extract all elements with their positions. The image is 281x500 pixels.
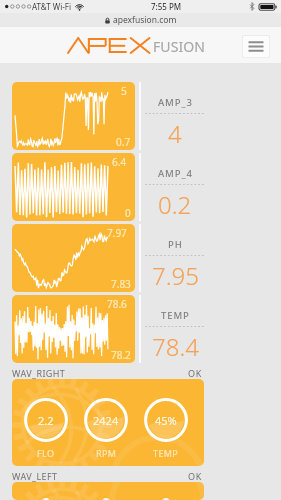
button[interactable]: 5 — [12, 82, 135, 150]
staticText: 7:55 PM — [151, 1, 182, 12]
staticText: OK — [188, 470, 203, 482]
staticText: apexfusion.com — [113, 14, 177, 26]
staticText: 7.95 — [152, 259, 199, 292]
staticText: 45% — [155, 413, 177, 428]
staticText: 0.2 — [158, 188, 192, 221]
staticText: 0.7 — [116, 135, 131, 149]
staticText: TEMP — [161, 309, 190, 322]
staticText: 0 — [125, 206, 131, 220]
staticText: AMP_4 — [158, 167, 193, 180]
button[interactable]: AMP_3 — [145, 82, 205, 150]
staticText: 78.4 — [152, 330, 199, 363]
staticText: PH — [168, 238, 183, 251]
button[interactable]: 6.4 — [12, 153, 135, 221]
staticText: FLO — [37, 447, 55, 459]
staticText: 7.83 — [111, 277, 131, 291]
button[interactable]: 2.2 — [12, 482, 204, 500]
staticText: 5 — [121, 84, 127, 98]
staticText: AT&T Wi-Fi — [32, 1, 72, 12]
button[interactable]: 78.6 — [12, 295, 135, 363]
staticText: 6.4 — [112, 155, 127, 169]
staticText: WAV_RIGHT — [12, 367, 66, 379]
staticText: OK — [188, 367, 203, 379]
button[interactable]: TEMP — [145, 295, 205, 363]
staticText: 4 — [168, 117, 182, 150]
staticText: 78.2 — [111, 348, 131, 362]
staticText: WAV_LEFT — [12, 470, 58, 482]
staticText: FUSION — [153, 37, 206, 56]
button[interactable]: Menu — [242, 35, 270, 58]
button[interactable]: PH — [145, 224, 205, 292]
staticText: AMP_3 — [158, 96, 193, 109]
button[interactable]: 2.2 — [12, 379, 204, 466]
staticText: 2424 — [93, 413, 119, 428]
staticText: 2.2 — [38, 413, 54, 428]
staticText: RPM — [96, 447, 117, 459]
button[interactable]: AMP_4 — [145, 153, 205, 221]
staticText: 78.6 — [107, 297, 127, 311]
staticText: TEMP — [153, 447, 179, 459]
staticText: 7.97 — [107, 226, 127, 240]
button[interactable]: 7.97 — [12, 224, 135, 292]
